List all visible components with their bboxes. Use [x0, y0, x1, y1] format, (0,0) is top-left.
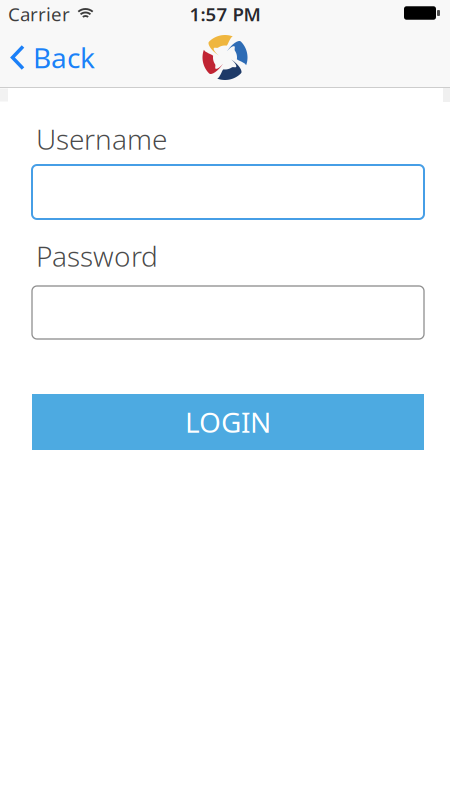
staticText: 1:57 PM — [189, 2, 260, 26]
staticText: Password — [36, 237, 158, 275]
staticText: Back — [33, 39, 95, 76]
button[interactable]: Back — [0, 39, 95, 76]
button[interactable]: Password — [32, 286, 424, 339]
staticText: Username — [36, 120, 167, 158]
staticText: LOGIN — [185, 403, 271, 441]
button[interactable]: Username — [32, 165, 424, 219]
button[interactable]: LOGIN — [32, 394, 424, 450]
staticText: Carrier — [8, 2, 70, 26]
